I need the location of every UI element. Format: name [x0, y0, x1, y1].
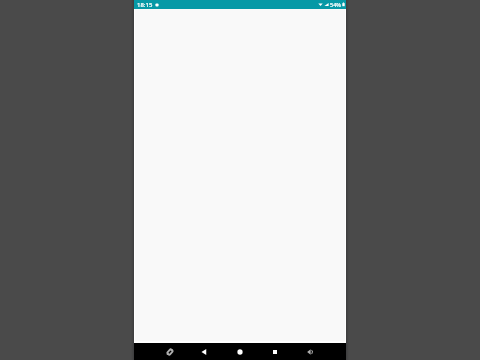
staticText: 54% [330, 1, 341, 8]
button[interactable]: Volume [293, 343, 327, 360]
staticText: 18:15 [137, 1, 153, 9]
button[interactable]: Home [223, 343, 257, 360]
button[interactable]: Back [187, 343, 221, 360]
button[interactable]: Rotate screen [153, 343, 187, 360]
button[interactable]: Recent apps [258, 343, 292, 360]
